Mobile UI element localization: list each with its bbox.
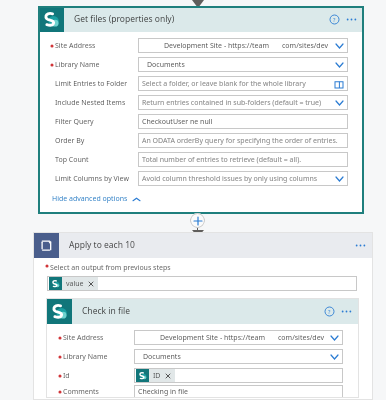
staticText: Total number of entries to retrieve (def… (142, 155, 302, 165)
staticText: ? (333, 16, 336, 23)
button[interactable]: An ODATA orderBy query for specifying th… (138, 133, 348, 148)
staticText: com/sites/dev (282, 41, 329, 51)
button[interactable]: Apply to each 10 (33, 232, 373, 258)
staticText: Development Site - https://team (160, 333, 266, 343)
staticText: Site Address (55, 41, 96, 51)
staticText: Hide advanced options (52, 194, 128, 204)
staticText: Id (63, 371, 70, 381)
staticText: Comments (63, 387, 99, 397)
staticText: Development Site - https://team (164, 41, 270, 51)
button[interactable]: Remove value (87, 280, 95, 288)
button[interactable]: Check in file (46, 298, 359, 324)
button[interactable]: More commands (353, 238, 367, 252)
button[interactable]: Avoid column threshold issues by only us… (138, 171, 348, 186)
button[interactable]: More commands (344, 12, 358, 26)
button[interactable]: Development Site - https://team (134, 330, 343, 345)
staticText: Top Count (55, 155, 89, 165)
other: Browse folder (335, 80, 343, 88)
button[interactable]: ID (136, 369, 175, 382)
staticText: Library Name (63, 352, 108, 362)
button[interactable]: Remove ID (164, 372, 172, 380)
button[interactable]: Help (323, 305, 335, 317)
button[interactable]: Total number of entries to retrieve (def… (138, 152, 348, 167)
button[interactable]: Checking in file (134, 385, 343, 398)
staticText: Order By (55, 136, 85, 146)
button[interactable]: value (47, 276, 357, 291)
staticText: Documents (143, 352, 181, 362)
staticText: value (66, 279, 84, 289)
staticText: Return entries contained in sub-folders … (142, 98, 322, 108)
button[interactable]: More commands (339, 304, 353, 318)
button[interactable]: Get files (properties only) (38, 6, 364, 32)
button[interactable]: ID (134, 368, 343, 383)
staticText: Library Name (55, 60, 100, 70)
staticText: Limit Entries to Folder (55, 79, 128, 89)
button[interactable]: Documents (138, 57, 348, 72)
button[interactable]: Insert a new step (190, 213, 205, 228)
button[interactable]: value (49, 277, 98, 290)
staticText: CheckoutUser ne null (142, 117, 213, 127)
button[interactable]: Help (328, 13, 340, 25)
staticText: Select a folder, or leave blank for the … (142, 79, 306, 89)
staticText: Include Nested Items (55, 98, 126, 108)
button[interactable]: Return entries contained in sub-folders … (138, 95, 348, 110)
button[interactable]: Hide advanced options (52, 194, 140, 204)
staticText: Check in file (82, 305, 131, 317)
staticText: Checking in file (138, 387, 188, 397)
staticText: ID (153, 371, 161, 381)
staticText: com/sites/dev (278, 333, 325, 343)
staticText: Documents (147, 60, 185, 70)
staticText: Avoid column threshold issues by only us… (142, 174, 330, 184)
staticText: Filter Query (55, 117, 94, 127)
staticText: Limit Columns by View (55, 174, 129, 184)
staticText: ? (328, 308, 331, 315)
staticText: Site Address (63, 333, 104, 343)
staticText: An ODATA orderBy query for specifying th… (142, 136, 338, 146)
button[interactable]: Select a folder, or leave blank for the … (138, 76, 348, 91)
button[interactable]: CheckoutUser ne null (138, 114, 348, 129)
staticText: Select an output from previous steps (50, 263, 171, 273)
button[interactable]: Development Site - https://team (138, 38, 348, 53)
button[interactable]: Documents (134, 349, 343, 364)
staticText: Apply to each 10 (69, 239, 135, 251)
staticText: Get files (properties only) (74, 13, 175, 25)
